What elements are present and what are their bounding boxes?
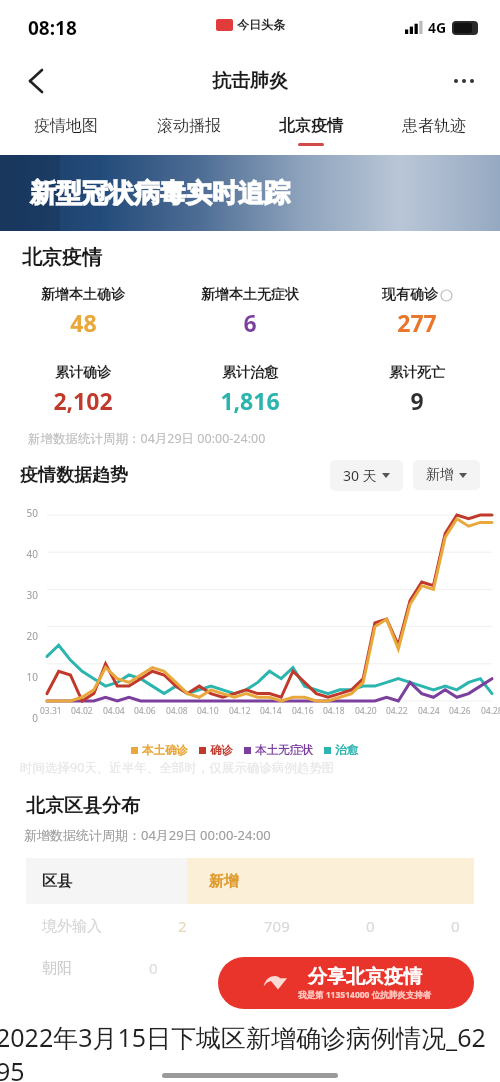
staticText: 本土无症状 (255, 743, 313, 757)
staticText: 2 (178, 916, 187, 936)
staticText: 治愈 (335, 743, 358, 757)
staticText: 0 (0, 711, 38, 725)
button[interactable]: 滚动播报 (157, 107, 221, 155)
staticText: 20 (0, 629, 38, 643)
staticText: 累计确诊 (55, 364, 111, 382)
button[interactable]: 30 天 (330, 460, 403, 491)
staticText: 04.16 (292, 705, 314, 717)
staticText: 04.22 (386, 705, 408, 717)
staticText: 疫情地图 (34, 116, 98, 136)
staticText: 30 (0, 588, 38, 602)
staticText: 现有确诊 (382, 286, 438, 304)
staticText: 时间选择90天、近半年、全部时，仅展示确诊病例趋势图 (20, 759, 335, 776)
staticText: 2,102 (53, 385, 113, 416)
staticText: 0 (366, 916, 375, 936)
staticText: 04.28 (481, 705, 500, 717)
staticText: 04.12 (229, 705, 251, 717)
staticText: 2022年3月15日下城区新增确诊病例情况_62 (0, 1020, 486, 1054)
staticText: 我是第 113514000 位抗肺炎支持者 (298, 989, 432, 1001)
staticText: 03.31 (40, 705, 62, 717)
staticText: 区县 (42, 872, 72, 891)
staticText: 1,816 (220, 385, 280, 416)
staticText: 北京疫情 (279, 116, 343, 136)
staticText: 抗击肺炎 (212, 69, 288, 93)
staticText: 04.18 (323, 705, 345, 717)
button[interactable]: 累计确诊 (0, 364, 166, 416)
button[interactable]: Back (16, 62, 54, 100)
staticText: 04.08 (166, 705, 188, 717)
staticText: 04.26 (449, 705, 471, 717)
staticText: 新增 (209, 872, 239, 891)
staticText: 朝阳 (42, 959, 72, 978)
staticText: 04.02 (71, 705, 93, 717)
staticText: 新增数据统计周期：04月29日 00:00-24:00 (28, 430, 266, 447)
staticText: 新增本土无症状 (201, 286, 299, 304)
staticText: 分享北京疫情 (308, 965, 422, 989)
staticText: 确诊 (210, 743, 233, 757)
staticText: 9 (410, 385, 424, 416)
button[interactable]: 新增本土确诊 (0, 286, 166, 338)
button[interactable]: 累计死亡 (333, 364, 500, 416)
staticText: 滚动播报 (157, 116, 221, 136)
staticText: 04.04 (103, 705, 125, 717)
button[interactable]: 疫情地图 (34, 107, 98, 155)
staticText: 0 (149, 958, 158, 978)
button[interactable]: More options (444, 61, 484, 101)
staticText: 40 (0, 547, 38, 561)
staticText: 48 (70, 307, 97, 338)
staticText: 新增 (426, 466, 454, 484)
staticText: 6 (243, 307, 257, 338)
staticText: 277 (397, 307, 437, 338)
staticText: 患者轨迹 (402, 116, 466, 136)
staticText: 北京疫情 (22, 245, 102, 270)
staticText: 04.14 (260, 705, 282, 717)
staticText: 累计治愈 (222, 364, 278, 382)
staticText: 0 (451, 916, 460, 936)
button[interactable]: 累计治愈 (166, 364, 333, 416)
staticText: 04.10 (197, 705, 219, 717)
staticText: 95 (0, 1054, 25, 1082)
staticText: 18 (442, 958, 460, 978)
staticText: 新增本土确诊 (41, 286, 125, 304)
staticText: 疫情数据趋势 (20, 464, 128, 487)
staticText: 04.20 (355, 705, 377, 717)
staticText: 今日头条 (237, 17, 285, 32)
staticText: 125 (339, 958, 365, 978)
button[interactable]: 现有确诊 (333, 286, 500, 338)
staticText: 08:18 (28, 15, 77, 41)
button[interactable]: 新增本土无症状 (166, 286, 333, 338)
staticText: 30 天 (343, 466, 377, 485)
staticText: 4G (428, 18, 447, 37)
button[interactable]: 北京疫情 (279, 107, 343, 155)
button[interactable]: 分享北京疫情 (218, 957, 474, 1009)
staticText: 50 (0, 506, 38, 520)
staticText: 04.24 (418, 705, 440, 717)
staticText: 04.06 (134, 705, 156, 717)
button[interactable]: 患者轨迹 (402, 107, 466, 155)
staticText: 境外输入 (42, 917, 102, 936)
staticText: 10 (0, 670, 38, 684)
staticText: 709 (264, 916, 290, 936)
button[interactable]: 新增 (413, 460, 480, 490)
staticText: 北京区县分布 (26, 794, 140, 818)
staticText: 新型冠状病毒实时追踪 (30, 177, 290, 210)
staticText: 本土确诊 (142, 743, 188, 757)
staticText: 新增数据统计周期：04月29日 00:00-24:00 (24, 826, 271, 844)
staticText: 累计死亡 (389, 364, 445, 382)
